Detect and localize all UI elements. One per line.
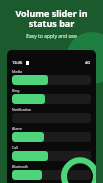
staticText: Call — [12, 145, 18, 150]
staticText: Bluetooth — [12, 164, 29, 169]
staticText: Notification — [12, 107, 32, 112]
button[interactable]: Bluetooth — [12, 164, 91, 183]
button[interactable]: Media — [12, 69, 91, 88]
staticText: Alarm — [12, 126, 22, 131]
button[interactable]: Call — [12, 145, 91, 164]
staticText: 4G — [85, 60, 91, 65]
staticText: Media — [12, 69, 23, 74]
button[interactable]: Alarm — [12, 126, 91, 145]
staticText: Volume slider in status bar — [15, 7, 88, 29]
button[interactable]: Notification — [12, 107, 91, 126]
staticText: 13:36 — [12, 60, 23, 65]
button[interactable]: Ring — [12, 88, 91, 107]
staticText: Easy to apply and use — [26, 33, 77, 40]
staticText: Ring — [12, 88, 20, 93]
